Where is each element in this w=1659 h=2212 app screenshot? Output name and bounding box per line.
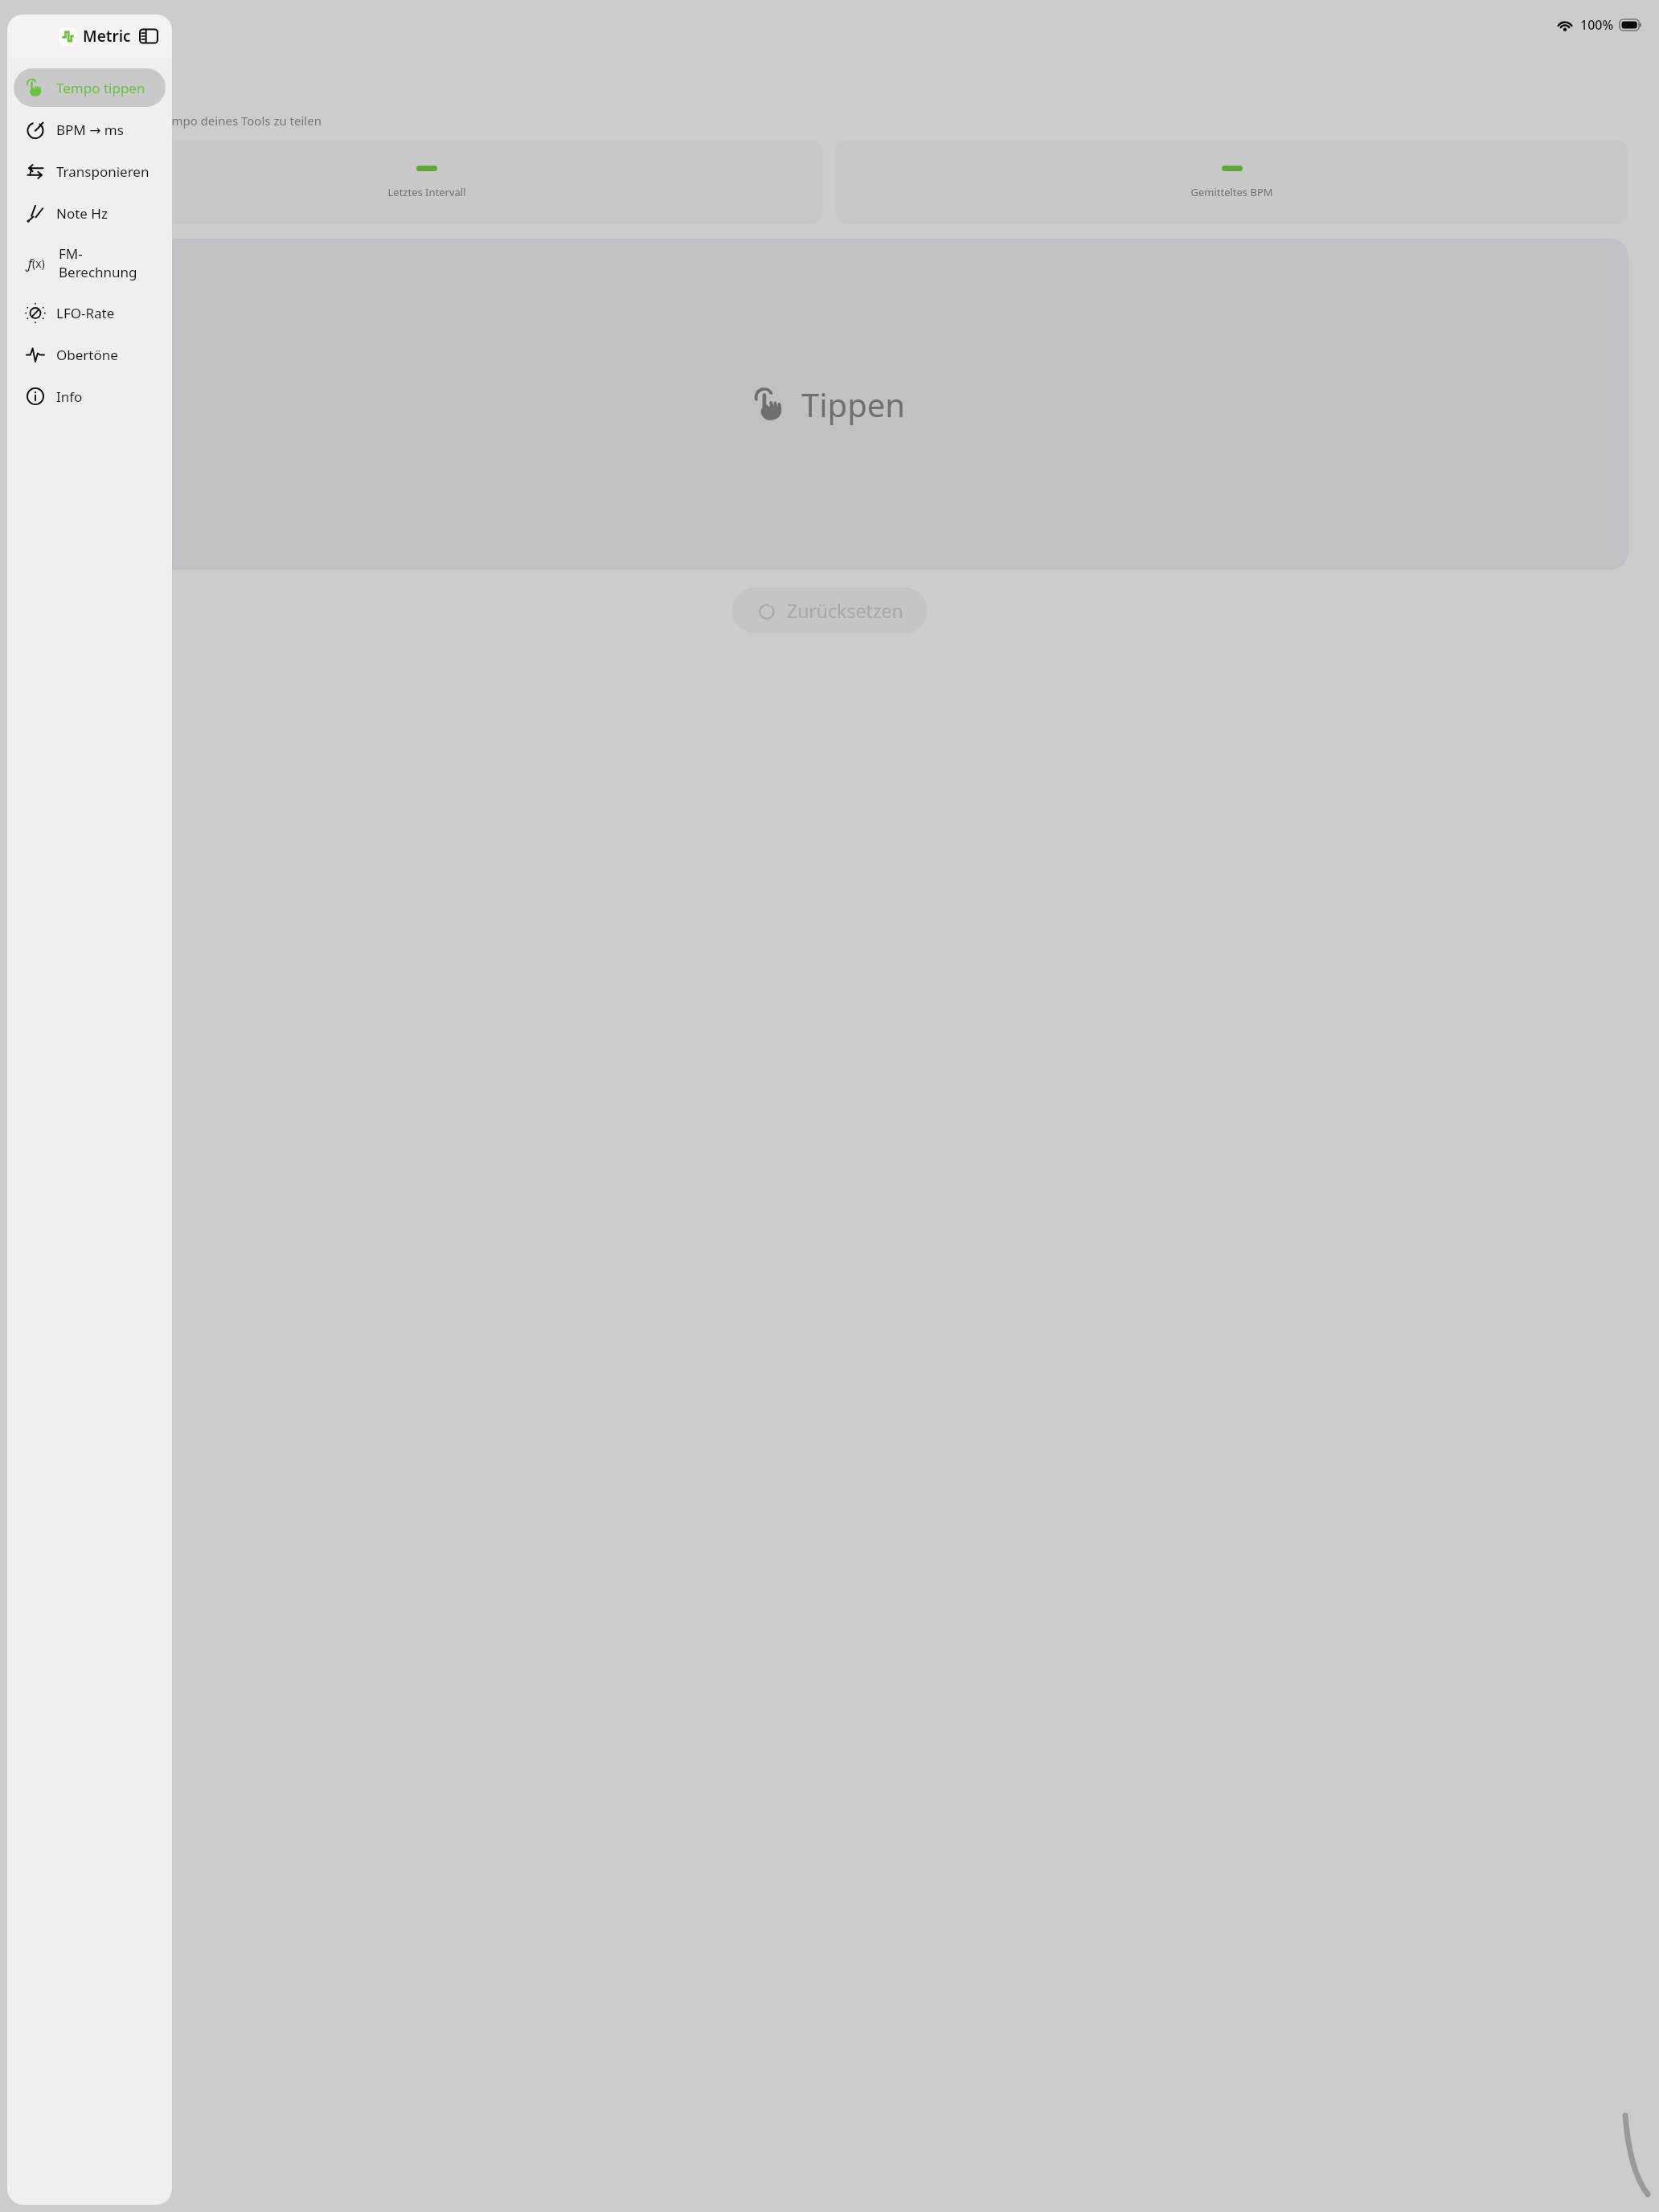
staticText: Obertöne — [56, 346, 118, 364]
staticText: Gemitteltes BPM — [1190, 185, 1273, 199]
button[interactable]: Seitenleiste umschalten — [135, 23, 162, 50]
button[interactable]: Obertöne — [14, 335, 166, 374]
button[interactable]: Tippen — [31, 239, 1628, 570]
staticText: (x) — [32, 256, 45, 271]
staticText: LFO-Rate — [56, 304, 115, 322]
button[interactable]: ƒ — [14, 236, 166, 290]
staticText: Note Hz — [56, 204, 108, 223]
staticText: Zurücksetzen — [787, 598, 903, 623]
staticText: 100% — [1580, 16, 1614, 34]
staticText: Tippe im Takt, um das Tempo deines Tools… — [32, 113, 322, 129]
staticText: Info — [56, 387, 83, 406]
staticText: Letztes Intervall — [387, 185, 466, 199]
button[interactable]: BPM → ms — [14, 110, 166, 149]
button[interactable]: LFO-Rate — [14, 293, 166, 332]
button[interactable]: Zurücksetzen — [732, 588, 928, 633]
staticText: BPM → ms — [56, 121, 124, 139]
staticText: Tippen — [801, 383, 906, 426]
staticText: ƒ — [27, 254, 32, 272]
button[interactable]: Info — [14, 377, 166, 416]
button[interactable]: Tempo tippen — [14, 68, 166, 107]
staticText: Tempo tippen — [56, 79, 145, 97]
staticText: Metric — [83, 26, 131, 47]
staticText: Thu 2 Apr — [67, 16, 130, 35]
button[interactable]: Note Hz — [14, 194, 166, 232]
staticText: Transponieren — [56, 162, 150, 181]
staticText: FM-Berechnung — [59, 244, 154, 281]
button[interactable]: Transponieren — [14, 152, 166, 190]
